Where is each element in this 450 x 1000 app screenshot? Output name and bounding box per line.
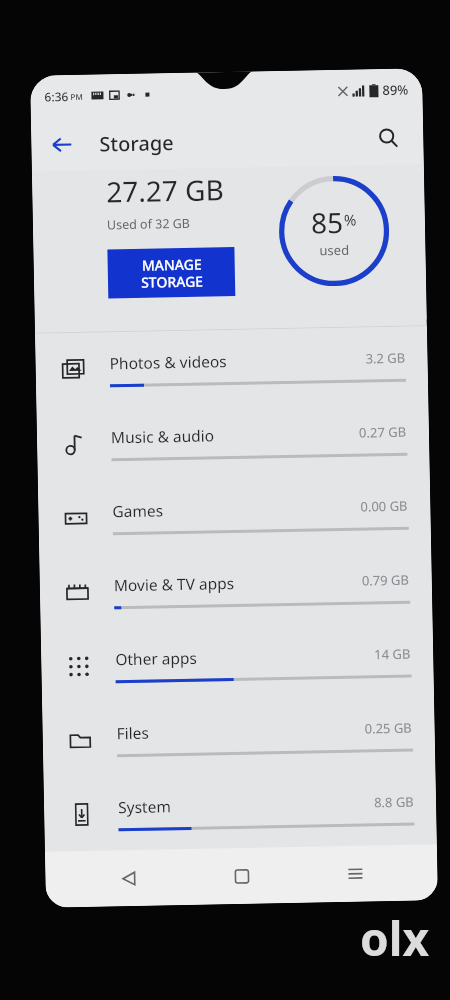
staticText: 85	[311, 203, 344, 241]
button[interactable]: MANAGE STORAGE	[107, 247, 235, 298]
staticText: Movie & TV apps	[114, 570, 362, 595]
staticText: used	[319, 241, 350, 259]
staticText: Games	[112, 496, 361, 521]
button[interactable]: Recent apps	[298, 849, 412, 899]
staticText: %	[344, 210, 357, 230]
button[interactable]: Back	[71, 853, 186, 903]
button[interactable]: Files	[42, 696, 435, 778]
staticText: MANAGE STORAGE	[140, 255, 203, 292]
staticText: 8.8 GB	[374, 793, 414, 811]
staticText: Music & audio	[111, 422, 359, 447]
button[interactable]: Games	[38, 474, 431, 556]
staticText: Other apps	[115, 643, 374, 669]
staticText: Photos & videos	[109, 347, 366, 373]
button[interactable]: Search	[367, 117, 410, 159]
staticText: 0.27 GB	[359, 423, 407, 442]
staticText: Storage	[99, 129, 175, 157]
button[interactable]: Movie & TV apps	[39, 548, 433, 630]
staticText: 0.00 GB	[360, 497, 408, 516]
staticText: System	[118, 791, 374, 817]
button[interactable]: System	[43, 770, 437, 852]
staticText: 3.2 GB	[365, 349, 406, 367]
staticText: 0.25 GB	[364, 719, 413, 737]
button[interactable]: Home	[185, 851, 299, 901]
staticText: 0.79 GB	[362, 571, 410, 589]
staticText: Used of 32 GB	[107, 215, 191, 233]
button[interactable]: Music & audio	[36, 400, 430, 482]
staticText: 27.27 GB	[106, 170, 225, 210]
button[interactable]: Other apps	[41, 622, 434, 704]
staticText: 6:36	[44, 88, 69, 105]
staticText: Files	[116, 717, 365, 743]
staticText: PM	[70, 91, 83, 102]
staticText: 89%	[382, 81, 408, 99]
staticText: olx	[360, 907, 430, 970]
button[interactable]: Back	[41, 124, 82, 165]
staticText: 14 GB	[374, 645, 411, 663]
button[interactable]: Photos & videos	[35, 326, 428, 408]
